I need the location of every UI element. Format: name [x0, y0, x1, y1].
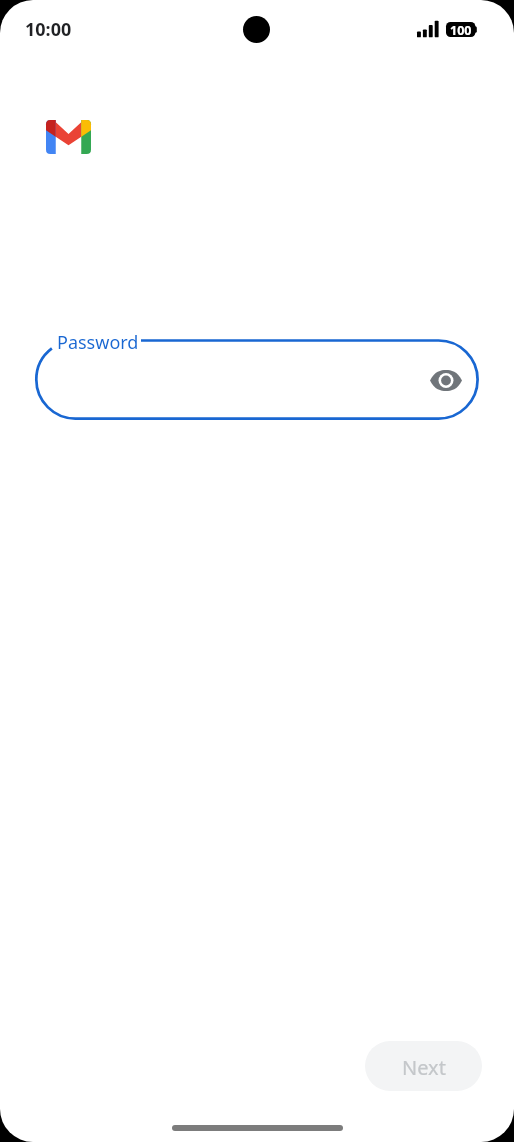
button[interactable]: Show password: [422, 356, 470, 404]
staticText: 100: [450, 22, 472, 37]
button[interactable]: Password: [36, 340, 478, 419]
staticText: Password: [57, 330, 139, 355]
staticText: Next: [402, 1054, 446, 1081]
staticText: 10:00: [25, 17, 72, 42]
button[interactable]: Next: [365, 1041, 482, 1091]
